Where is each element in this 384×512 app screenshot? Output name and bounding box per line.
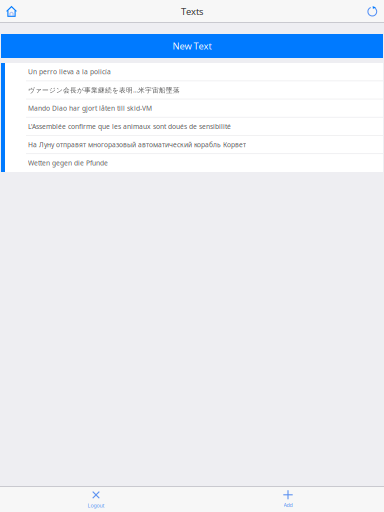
staticText: Add (283, 501, 292, 509)
button[interactable]: Un perro lleva a la policía (1, 63, 383, 81)
staticText: Logout (87, 502, 104, 509)
button[interactable]: ヴァージン会長が事業継続を表明…米宇宙船墜落 (1, 81, 383, 99)
button[interactable]: New Text (1, 34, 383, 58)
staticText: Wetten gegen die Pfunde (28, 159, 108, 167)
staticText: Un perro lleva a la policía (28, 67, 111, 76)
button[interactable]: Home (0, 1, 22, 22)
button[interactable]: Mando Diao har gjort låten till skid-VM (1, 99, 383, 118)
staticText: ヴァージン会長が事業継続を表明…米宇宙船墜落 (28, 85, 180, 94)
button[interactable]: На Луну отправят многоразовый автоматиче… (1, 136, 383, 154)
button[interactable]: Logout (0, 487, 192, 512)
staticText: L'Assemblée confirme que les animaux son… (28, 122, 231, 131)
staticText: Mando Diao har gjort låten till skid-VM (28, 104, 152, 113)
button[interactable]: L'Assemblée confirme que les animaux son… (1, 118, 383, 136)
button[interactable]: Wetten gegen die Pfunde (1, 154, 383, 172)
button[interactable]: Add (192, 487, 384, 512)
button[interactable]: Refresh (362, 1, 384, 22)
staticText: На Луну отправят многоразовый автоматиче… (28, 140, 246, 149)
staticText: Texts (181, 5, 203, 18)
staticText: New Text (172, 40, 211, 52)
